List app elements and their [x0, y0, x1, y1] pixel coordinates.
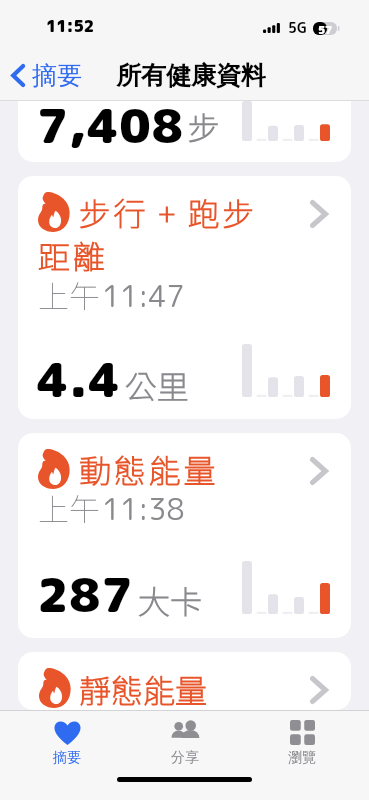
staticText: 11:52	[46, 15, 94, 37]
other: Details	[310, 457, 328, 485]
staticText: 287	[37, 561, 134, 627]
staticText: 分享	[171, 749, 199, 767]
button[interactable]: 分享	[135, 720, 235, 768]
button[interactable]: 摘要	[17, 720, 117, 768]
staticText: 7,408	[37, 101, 184, 153]
button[interactable]: 瀏覽	[252, 720, 352, 768]
staticText: 摘要	[32, 60, 82, 91]
staticText: 11:47	[102, 276, 185, 316]
button[interactable]: 步行 + 跑步距離	[18, 176, 351, 419]
staticText: 上午	[38, 485, 100, 530]
staticText: 步	[188, 103, 221, 149]
staticText: 11:38	[102, 489, 185, 529]
staticText: 所有健康資料	[116, 60, 266, 91]
staticText: 5G	[288, 18, 307, 38]
staticText: 動態能量	[38, 446, 262, 492]
staticText: 上午	[38, 272, 100, 317]
other: Back	[10, 63, 26, 88]
staticText: 步行 + 跑步距離	[38, 189, 262, 279]
staticText: 大卡	[138, 577, 203, 623]
other: Details	[310, 676, 328, 704]
button[interactable]: Back	[10, 60, 82, 91]
button[interactable]: 靜態能量	[18, 652, 351, 710]
staticText: 瀏覽	[288, 749, 316, 767]
button[interactable]: 動態能量	[18, 433, 351, 638]
button[interactable]: 7,408	[18, 101, 351, 162]
other: Details	[310, 200, 328, 228]
other: Battery 57 percent	[313, 22, 339, 35]
staticText: 摘要	[53, 749, 81, 767]
staticText: 4.4	[37, 346, 121, 412]
staticText: 57	[318, 22, 332, 35]
staticText: 公里	[125, 362, 190, 408]
staticText: 靜態能量	[79, 666, 208, 710]
